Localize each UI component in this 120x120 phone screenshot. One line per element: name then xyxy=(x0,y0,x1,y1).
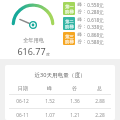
button[interactable]: 近30天用电量（度） xyxy=(5,65,115,120)
button[interactable]: Annual electricity usage gauge xyxy=(5,0,61,59)
staticText: 0.618元 xyxy=(87,17,104,23)
staticText: 阶梯 xyxy=(65,24,74,29)
staticText: 0.288元 xyxy=(87,9,104,15)
staticText: 616.77 xyxy=(17,45,46,57)
staticText: 阶梯 xyxy=(65,9,74,14)
staticText: 峰： xyxy=(77,2,87,8)
staticText: 0.338元 xyxy=(87,24,104,30)
staticText: 第三 xyxy=(65,34,74,39)
staticText: 谷： xyxy=(77,24,87,30)
staticText: 近30天用电量（度） xyxy=(34,71,86,79)
staticText: 1.36 xyxy=(70,98,80,105)
staticText: 日期 xyxy=(18,85,28,91)
button[interactable]: 第三 xyxy=(63,32,104,45)
button[interactable]: 第二 xyxy=(63,17,104,30)
staticText: 0.868元 xyxy=(87,32,104,38)
staticText: 1.07 xyxy=(45,112,55,119)
staticText: 全年用电 xyxy=(23,37,44,44)
staticText: 峰： xyxy=(77,32,87,38)
staticText: 第二 xyxy=(65,19,74,24)
staticText: 06-11 xyxy=(16,112,29,119)
staticText: 06-12 xyxy=(16,98,29,105)
staticText: 峰： xyxy=(77,17,87,23)
staticText: 谷： xyxy=(77,39,87,45)
staticText: 1.21 xyxy=(70,112,80,119)
staticText: 2.28 xyxy=(95,112,105,119)
staticText: 度 xyxy=(46,52,50,57)
staticText: 总 xyxy=(97,85,102,91)
staticText: 2.88 xyxy=(95,98,105,105)
staticText: 谷 xyxy=(72,85,77,91)
staticText: 0.588元 xyxy=(87,39,104,45)
button[interactable]: 第一 xyxy=(63,2,104,15)
staticText: 0.558元 xyxy=(87,2,104,8)
staticText: 峰 xyxy=(47,85,52,91)
staticText: 第一 xyxy=(65,4,74,9)
staticText: 谷： xyxy=(77,9,87,15)
staticText: 阶梯 xyxy=(65,39,74,44)
staticText: 1.52 xyxy=(45,98,55,105)
